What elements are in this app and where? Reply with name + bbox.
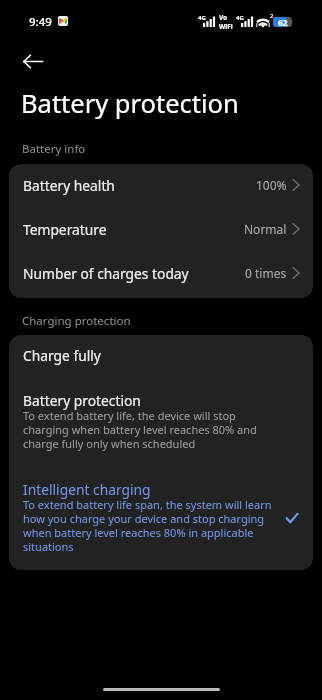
button[interactable]: Battery health [9,164,313,208]
staticText: 9:49 [29,14,52,30]
staticText: Temperature [23,220,107,239]
button[interactable]: Intelligent charging [9,480,313,556]
staticText: 62 [278,17,288,27]
button[interactable]: Back [13,41,53,81]
button[interactable]: Battery protection [9,391,313,453]
staticText: To extend battery life, the device will … [23,408,272,451]
staticText: Charging protection [22,313,131,329]
staticText: To extend battery life span, the system … [23,497,272,554]
staticText: Vo [219,13,228,22]
staticText: Number of charges today [23,264,189,283]
button[interactable]: Number of charges today [9,252,313,296]
staticText: Battery info [22,141,86,157]
button[interactable]: Charge fully [9,335,313,376]
staticText: 0 times [245,265,287,281]
staticText: Battery protection [23,391,141,410]
staticText: 4G [236,14,244,22]
staticText: Normal [244,221,287,237]
staticText: Battery protection [21,86,239,121]
staticText: Charge fully [23,346,101,365]
staticText: Battery health [23,176,115,195]
button[interactable]: Temperature [9,208,313,252]
staticText: 100% [256,177,287,193]
staticText: 4G [198,14,206,22]
staticText: 2 [270,12,274,20]
staticText: Intelligent charging [23,480,151,499]
staticText: WiFi [219,22,233,31]
